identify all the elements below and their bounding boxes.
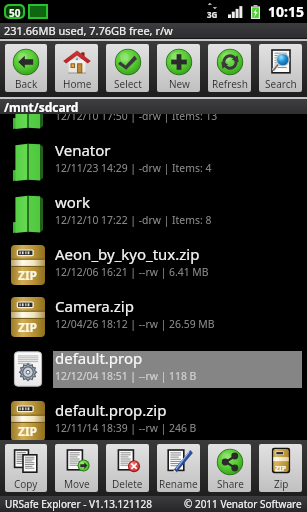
staticText: Move — [64, 477, 90, 491]
staticText: default.prop.zip — [55, 400, 167, 420]
staticText: 12/12/10 17:22 | -drw | Items: 8 — [55, 213, 212, 227]
staticText: 231.66MB used, 7.76GB free, r/w — [4, 23, 173, 38]
staticText: Delete — [112, 477, 143, 491]
button[interactable]: ZIP — [0, 291, 307, 343]
staticText: 12/11/23 14:29 | -drw | Items: 4 — [55, 161, 212, 175]
staticText: 12/12/10 17:50 | -drw | Items: 13 — [55, 114, 218, 123]
button[interactable]: New — [157, 44, 200, 92]
button[interactable]: Search — [259, 44, 302, 92]
staticText: 10:15 — [268, 2, 304, 21]
staticText: Search — [265, 77, 297, 91]
staticText: ZIP — [18, 267, 38, 283]
staticText: Zip — [274, 477, 289, 491]
staticText: 50 — [9, 6, 21, 17]
staticText: 12/12/06 16:21 | --rw | 6.41 MB — [55, 265, 209, 279]
staticText: Venator — [55, 140, 111, 160]
button[interactable]: Rename — [157, 444, 200, 492]
staticText: ZIP — [18, 319, 38, 335]
staticText: Copy — [14, 477, 38, 491]
staticText: Refresh — [212, 77, 248, 91]
staticText: 12/04/26 18:12 | --rw | 26.59 MB — [55, 317, 215, 331]
staticText: © 2011 Venator Software — [184, 497, 302, 511]
button[interactable]: Share — [208, 444, 251, 492]
staticText: Share — [217, 477, 244, 491]
button[interactable]: default.prop — [0, 343, 307, 395]
staticText: /mnt/sdcard — [4, 99, 79, 114]
staticText: Select — [114, 77, 142, 91]
staticText: Home — [63, 77, 92, 91]
button[interactable]: Home — [55, 44, 98, 92]
button[interactable]: Copy — [5, 444, 47, 492]
button[interactable]: Refresh — [208, 44, 251, 92]
staticText: Camera.zip — [55, 296, 134, 316]
staticText: Back — [15, 77, 38, 91]
button[interactable]: work — [0, 187, 307, 239]
button[interactable]: ZIP — [0, 239, 307, 291]
staticText: New — [169, 77, 190, 91]
staticText: 12/12/04 18:51 | --rw | 118 B — [55, 369, 197, 383]
button[interactable]: ZIP — [0, 395, 307, 440]
staticText: Rename — [159, 477, 198, 491]
staticText: Aeon_by_kyo_tux.zip — [55, 244, 200, 264]
button[interactable]: Back — [5, 44, 47, 92]
staticText: 3G — [207, 9, 218, 20]
button[interactable]: Select — [106, 44, 149, 92]
staticText: ZIP — [275, 464, 287, 474]
staticText: 12/11/14 18:39 | --rw | 246 B — [55, 421, 197, 435]
button[interactable]: Move — [55, 444, 98, 492]
button[interactable]: Venator — [0, 135, 307, 187]
staticText: ZIP — [18, 423, 38, 439]
staticText: default.prop — [55, 348, 143, 368]
staticText: URSafe Explorer - V1.13.121128 — [5, 497, 152, 511]
button[interactable]: ZIP — [259, 444, 302, 492]
staticText: work — [55, 192, 91, 212]
button[interactable]: Delete — [106, 444, 149, 492]
button[interactable]: Android — [0, 114, 307, 135]
